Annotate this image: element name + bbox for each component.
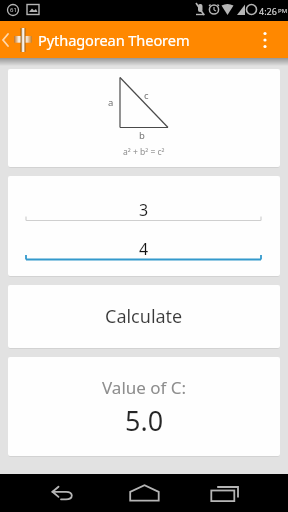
staticText: 4:26: [259, 5, 277, 17]
button[interactable]: 3: [26, 195, 262, 225]
staticText: 61: [10, 6, 17, 14]
staticText: PM: [278, 7, 288, 15]
staticText: a: [108, 96, 114, 109]
button[interactable]: Pythagorean Theorem: [0, 21, 288, 58]
staticText: b: [139, 129, 145, 142]
button[interactable]: 4: [26, 234, 262, 264]
staticText: a² + b² = c²: [123, 146, 165, 158]
staticText: Value of C:: [102, 376, 187, 399]
staticText: Pythagorean Theorem: [38, 30, 190, 50]
button[interactable]: [192, 474, 288, 512]
staticText: 5.0: [125, 402, 164, 439]
staticText: c: [144, 89, 149, 102]
staticText: 3: [139, 199, 149, 221]
button[interactable]: [96, 474, 192, 512]
staticText: 4: [139, 238, 149, 260]
staticText: Calculate: [105, 304, 183, 329]
button[interactable]: [0, 474, 96, 512]
button[interactable]: Calculate: [8, 285, 280, 348]
